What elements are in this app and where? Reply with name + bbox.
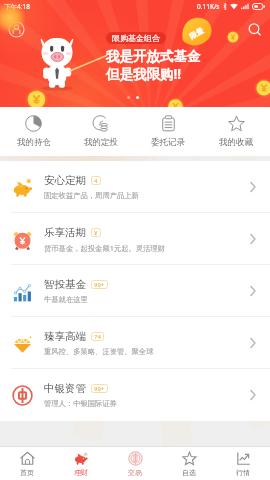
button[interactable]: Search — [246, 21, 264, 39]
staticText: ¥ — [94, 229, 98, 237]
button[interactable]: 行情 — [216, 447, 270, 480]
staticText: 我的定投 — [84, 137, 118, 148]
staticText: 我是开放式基金 — [106, 48, 201, 65]
button[interactable]: 安心定期 — [0, 161, 270, 213]
staticText: 安心定期 — [44, 174, 86, 187]
staticText: 我的持仓 — [17, 137, 51, 148]
staticText: 臻享高端 — [44, 330, 86, 343]
staticText: 牛基就在这里 — [44, 295, 88, 304]
button[interactable]: 中银资管 — [0, 369, 270, 421]
staticText: 下午4:18 — [4, 2, 30, 11]
staticText: 行情 — [236, 468, 250, 477]
staticText: 99+ — [94, 281, 105, 289]
staticText: 理财 — [74, 468, 88, 477]
staticText: 4 — [94, 177, 98, 185]
button[interactable]: 我的收藏 — [202, 107, 270, 156]
button[interactable]: 理财 — [54, 447, 108, 480]
button[interactable]: 乐享活期 — [0, 213, 270, 265]
staticText: 自选 — [182, 468, 196, 477]
staticText: 0.11K/s — [197, 2, 220, 11]
staticText: 但是我限购!! — [106, 65, 182, 83]
button[interactable]: Profile — [8, 21, 25, 38]
staticText: 99+ — [94, 385, 105, 393]
staticText: 重风控、多策略、泛资管、聚全球 — [44, 347, 154, 356]
staticText: 固定收益产品，周周产品上新 — [44, 191, 139, 200]
staticText: 交易 — [128, 468, 142, 477]
staticText: 首页 — [20, 468, 34, 477]
button[interactable]: 委托记录 — [134, 107, 202, 156]
staticText: 限购基金组合 — [112, 33, 160, 43]
staticText: 委托记录 — [151, 137, 185, 148]
button[interactable]: 自选 — [162, 447, 216, 480]
button[interactable]: 臻享高端 — [0, 317, 270, 369]
staticText: 限量 — [188, 26, 205, 41]
button[interactable]: 智投基金 — [0, 265, 270, 317]
staticText: 74 — [94, 333, 101, 341]
staticText: 中银资管 — [44, 382, 86, 395]
button[interactable]: 交易 — [108, 447, 162, 480]
staticText: 货币基金，起投金额1元起。灵活理财 — [44, 243, 165, 253]
staticText: 我的收藏 — [219, 137, 253, 148]
staticText: 乐享活期 — [44, 226, 86, 239]
button[interactable]: 我的持仓 — [0, 107, 67, 156]
staticText: 智投基金 — [44, 278, 86, 291]
staticText: 管理人：中银国际证券 — [44, 399, 117, 408]
button[interactable]: 我的定投 — [67, 107, 134, 156]
button[interactable]: 首页 — [0, 447, 54, 480]
